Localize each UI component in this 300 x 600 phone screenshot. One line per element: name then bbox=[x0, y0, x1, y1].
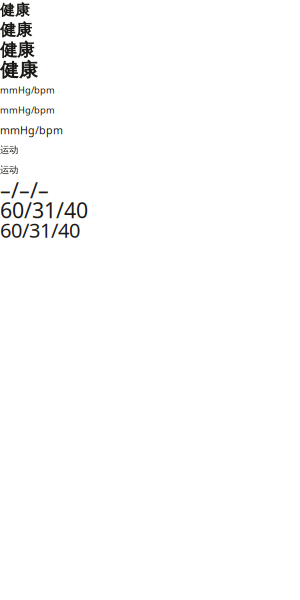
staticText: 健康 bbox=[0, 39, 34, 61]
staticText: 运动 bbox=[0, 164, 18, 176]
staticText: mmHg/bpm bbox=[0, 123, 63, 137]
staticText: 健康 bbox=[0, 1, 30, 19]
staticText: 60/31/40 bbox=[0, 217, 80, 243]
staticText: 健康 bbox=[0, 58, 38, 81]
staticText: mmHg/bpm bbox=[0, 84, 55, 96]
staticText: –/–/– bbox=[0, 176, 49, 204]
staticText: 健康 bbox=[0, 20, 32, 40]
staticText: 60/31/40 bbox=[0, 196, 88, 224]
staticText: 运动 bbox=[0, 144, 18, 156]
staticText: mmHg/bpm bbox=[0, 104, 55, 116]
